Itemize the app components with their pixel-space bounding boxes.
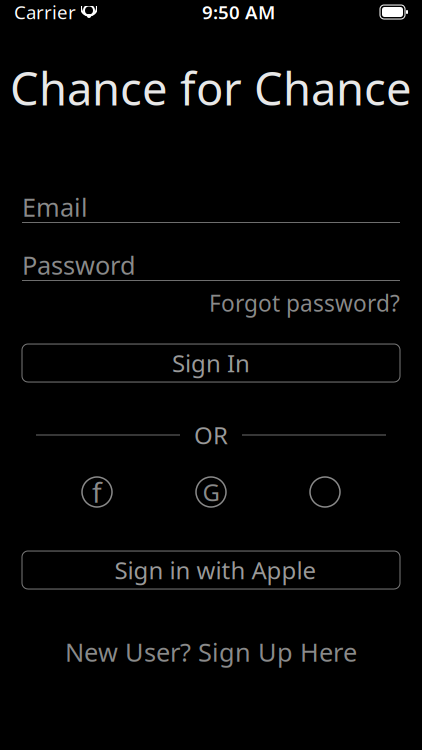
staticText: Sign In	[172, 347, 250, 379]
staticText: Email	[22, 190, 88, 224]
staticText: New User? Sign Up Here	[65, 635, 357, 669]
staticText: Chance for Chance	[10, 57, 412, 119]
staticText: Forgot password?	[209, 288, 400, 318]
staticText: Sign in with Apple	[114, 554, 316, 586]
button[interactable]: New User? Sign Up Here	[0, 635, 422, 669]
button[interactable]: Sign in with Google	[194, 475, 228, 509]
staticText: Carrier	[14, 0, 76, 24]
button[interactable]: Forgot password?	[0, 281, 422, 325]
staticText: f	[92, 473, 102, 511]
staticText: Password	[22, 248, 136, 282]
button[interactable]: Sign In	[22, 344, 400, 382]
button[interactable]	[22, 551, 400, 589]
staticText: 9:50 AM	[202, 0, 275, 24]
button[interactable]: Sign in with Twitter	[308, 475, 342, 509]
staticText: OR	[194, 419, 228, 451]
button[interactable]: Sign in with Facebook	[80, 475, 114, 509]
staticText: G	[202, 476, 219, 508]
